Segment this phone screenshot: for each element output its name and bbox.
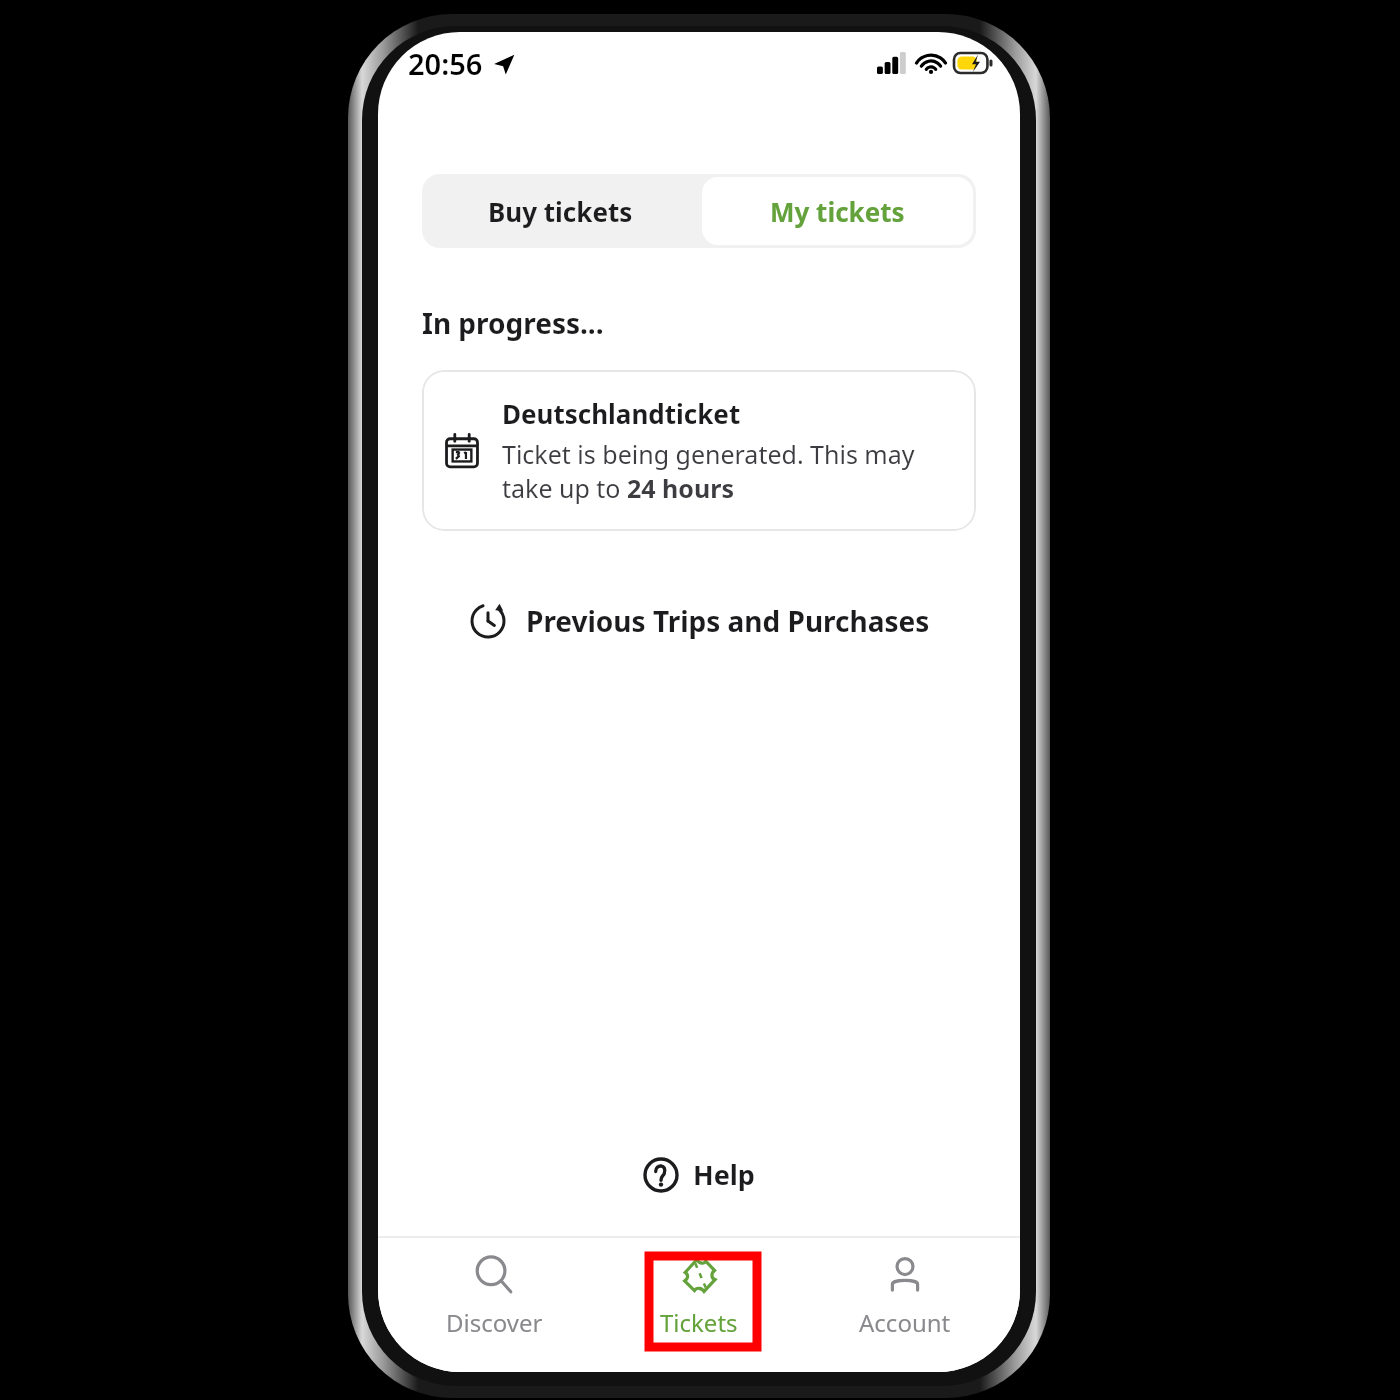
staticText: Ticket is being generated. This may take… bbox=[502, 437, 922, 505]
button[interactable]: My tickets bbox=[702, 177, 973, 245]
staticText: Deutschlandticket bbox=[502, 396, 741, 431]
button[interactable]: Account bbox=[815, 1238, 995, 1339]
staticText: Account bbox=[859, 1306, 951, 1339]
button[interactable]: Previous Trips and Purchases bbox=[454, 593, 944, 649]
staticText: Buy tickets bbox=[488, 194, 633, 229]
staticText: Tickets bbox=[660, 1306, 738, 1339]
staticText: Previous Trips and Purchases bbox=[526, 602, 930, 640]
button[interactable]: Discover bbox=[404, 1238, 584, 1339]
staticText: Help bbox=[693, 1156, 755, 1193]
button[interactable]: Deutschlandticket bbox=[422, 370, 976, 531]
staticText: In progress... bbox=[422, 304, 604, 342]
staticText: Discover bbox=[446, 1306, 543, 1339]
button[interactable]: Help bbox=[633, 1150, 765, 1199]
staticText: 20:56 bbox=[408, 44, 483, 83]
button[interactable]: Buy tickets bbox=[422, 174, 699, 248]
staticText: My tickets bbox=[770, 194, 905, 229]
button[interactable]: Tickets bbox=[609, 1238, 789, 1339]
